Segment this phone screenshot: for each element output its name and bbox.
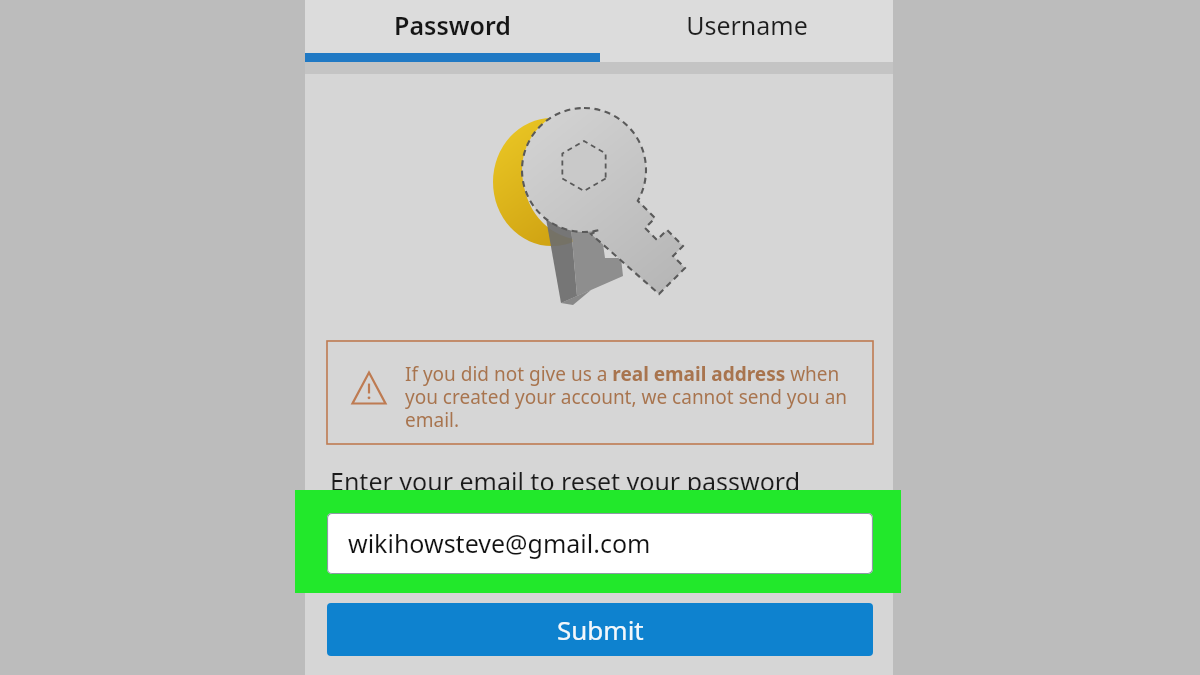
staticText: Enter your email to reset your password	[330, 464, 801, 498]
button[interactable]: Submit	[327, 603, 873, 656]
button[interactable]: Password	[305, 0, 600, 62]
button[interactable]: Username	[600, 0, 893, 62]
staticText: Username	[686, 8, 808, 42]
staticText: If you did not give us a real email addr…	[405, 361, 855, 433]
button[interactable]: wikihowsteve@gmail.com	[327, 513, 873, 574]
staticText: Password	[394, 8, 511, 42]
other: Password key illustration	[487, 100, 707, 320]
staticText: wikihowsteve@gmail.com	[348, 526, 651, 560]
staticText: Submit	[557, 612, 644, 647]
